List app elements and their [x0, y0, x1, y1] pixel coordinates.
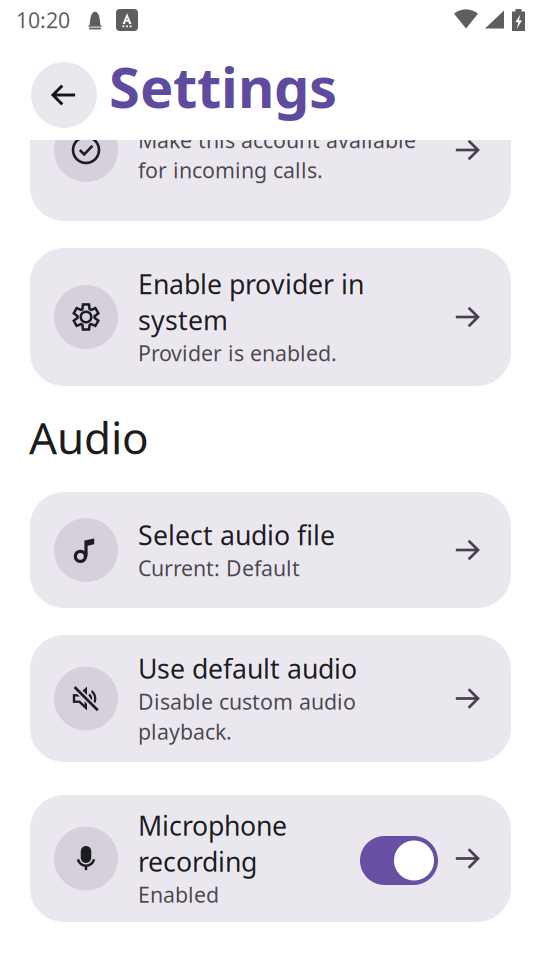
- button[interactable]: Back: [31, 62, 97, 128]
- staticText: Disable custom audio: [138, 687, 356, 716]
- staticText: Use default audio: [138, 651, 357, 686]
- staticText: 10:20: [16, 6, 70, 34]
- button[interactable]: Make this account available for incoming…: [30, 79, 511, 221]
- staticText: Enabled: [138, 880, 219, 909]
- staticText: system: [138, 302, 228, 338]
- staticText: Microphone: [138, 808, 287, 843]
- staticText: Current: Default: [138, 554, 300, 582]
- button[interactable]: Enable provider in system: [30, 248, 511, 386]
- staticText: playback.: [138, 717, 232, 746]
- button[interactable]: Microphone recording: [30, 795, 511, 922]
- button[interactable]: Use default audio: [30, 635, 511, 762]
- staticText: Settings: [109, 49, 337, 123]
- staticText: Enable provider in: [138, 266, 364, 302]
- staticText: Audio: [29, 408, 149, 466]
- staticText: Provider is enabled.: [138, 339, 337, 367]
- button[interactable]: Select audio file: [30, 492, 511, 608]
- staticText: Make this account available: [138, 126, 416, 154]
- staticText: for incoming calls.: [138, 156, 323, 184]
- staticText: Select audio file: [138, 517, 335, 553]
- staticText: recording: [138, 844, 257, 879]
- staticText: Account available: [138, 89, 357, 125]
- button[interactable]: Microphone recording toggle, on: [360, 836, 438, 885]
